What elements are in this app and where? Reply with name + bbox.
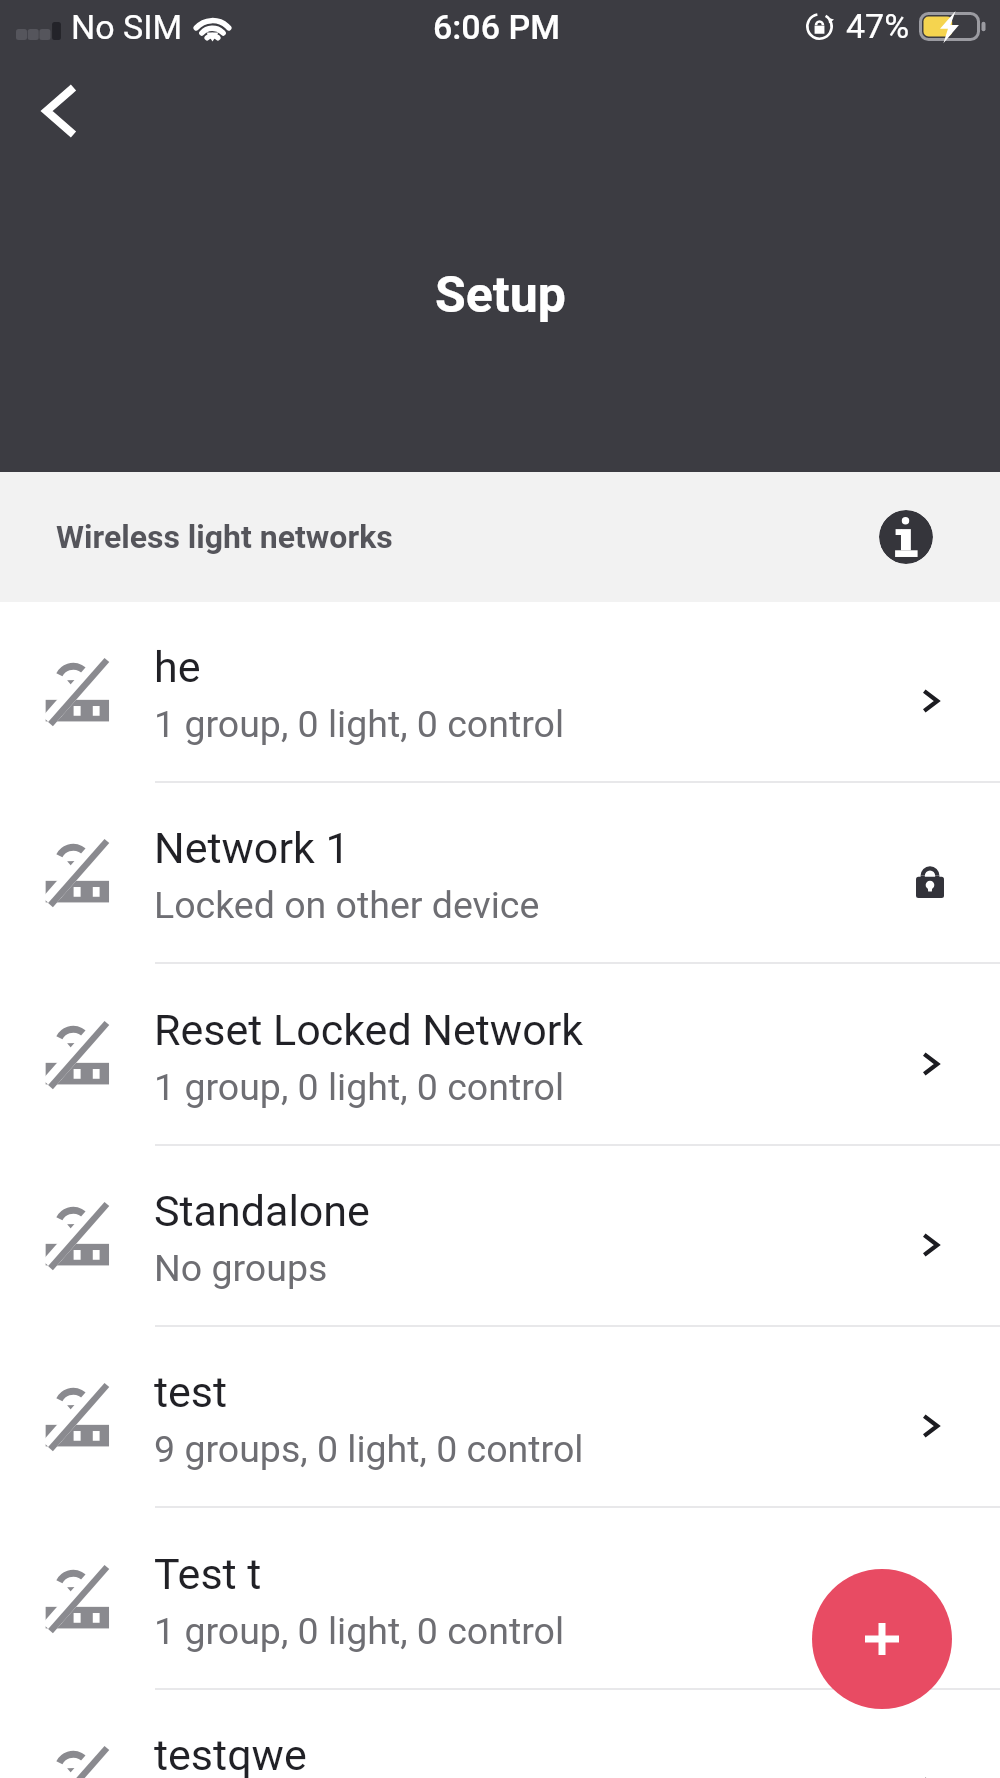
button[interactable]: Back bbox=[13, 66, 103, 156]
staticText: No groups bbox=[154, 1246, 328, 1290]
button[interactable]: Test t bbox=[0, 1509, 1000, 1690]
staticText: Test t bbox=[154, 1549, 262, 1599]
other: Open bbox=[917, 1595, 943, 1621]
staticText: Wireless light networks bbox=[56, 518, 393, 556]
staticText: No SIM bbox=[71, 7, 183, 47]
button[interactable]: testqwe bbox=[0, 1690, 1000, 1778]
staticText: Setup bbox=[435, 266, 566, 325]
button[interactable]: Add network bbox=[812, 1569, 952, 1709]
staticText: 47% bbox=[846, 6, 910, 46]
staticText: 1 group, 0 light, 0 control bbox=[154, 1609, 565, 1653]
other: Locked bbox=[916, 865, 944, 898]
staticText: Locked on other device bbox=[154, 883, 540, 927]
other: Open bbox=[917, 1413, 943, 1439]
staticText: 1 group, 0 light, 0 control bbox=[154, 1065, 565, 1109]
staticText: 9 groups, 0 light, 0 control bbox=[154, 1427, 584, 1471]
staticText: 1 group, 0 light, 0 control bbox=[154, 702, 565, 746]
button[interactable]: Standalone bbox=[0, 1146, 1000, 1327]
staticText: test bbox=[154, 1367, 228, 1417]
other: Open bbox=[917, 1776, 943, 1778]
staticText: Standalone bbox=[154, 1186, 370, 1236]
staticText: Reset Locked Network bbox=[154, 1005, 584, 1055]
button[interactable]: he bbox=[0, 602, 1000, 783]
staticText: 6:06 PM bbox=[433, 7, 560, 47]
button[interactable]: Network 1 bbox=[0, 783, 1000, 964]
staticText: he bbox=[154, 642, 201, 692]
button[interactable]: Information bbox=[879, 510, 933, 564]
staticText: Network 1 bbox=[154, 823, 350, 873]
button[interactable]: test bbox=[0, 1327, 1000, 1508]
staticText: testqwe bbox=[154, 1730, 307, 1778]
other: Open bbox=[917, 688, 943, 714]
other: Open bbox=[917, 1232, 943, 1258]
other: Open bbox=[917, 1051, 943, 1077]
button[interactable]: Reset Locked Network bbox=[0, 965, 1000, 1146]
